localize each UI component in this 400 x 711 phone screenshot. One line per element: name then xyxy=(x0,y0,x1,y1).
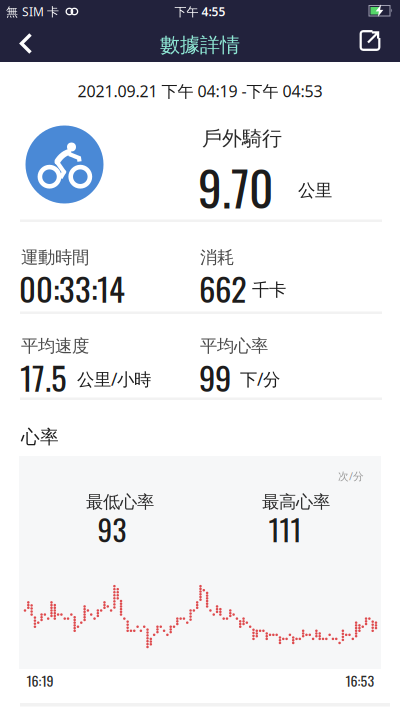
staticText: 17.5 xyxy=(20,353,67,401)
staticText: 次/分 xyxy=(338,469,364,483)
staticText: 公里 xyxy=(298,180,332,201)
staticText: 千卡 xyxy=(252,279,286,301)
staticText: 93 xyxy=(97,507,126,551)
staticText: 運動時間 xyxy=(21,247,89,268)
staticText: 111 xyxy=(268,507,301,551)
staticText: 16:53 xyxy=(345,670,374,691)
staticText: 最高心率 xyxy=(262,491,330,513)
staticText: 00:33:14 xyxy=(19,264,125,312)
staticText: 下午 4:55 xyxy=(174,3,225,19)
staticText: 平均心率 xyxy=(200,335,268,357)
staticText: 最低心率 xyxy=(86,491,154,513)
staticText: 心率 xyxy=(21,425,59,448)
staticText: 公里/小時 xyxy=(77,367,151,390)
button[interactable]: Back xyxy=(19,32,32,54)
staticText: 2021.09.21 下午 04:19 -下午 04:53 xyxy=(77,80,322,102)
staticText: 99 xyxy=(199,353,231,401)
staticText: 下/分 xyxy=(240,367,280,390)
staticText: 數據詳情 xyxy=(160,33,240,57)
staticText: 無 SIM 卡 xyxy=(6,3,59,19)
staticText: 戶外騎行 xyxy=(202,126,282,151)
staticText: 16:19 xyxy=(26,670,53,691)
button[interactable]: Share xyxy=(359,30,380,51)
staticText: 662 xyxy=(199,264,247,312)
staticText: 消耗 xyxy=(200,247,234,268)
staticText: 平均速度 xyxy=(21,335,89,357)
staticText: 9.70 xyxy=(198,152,273,222)
